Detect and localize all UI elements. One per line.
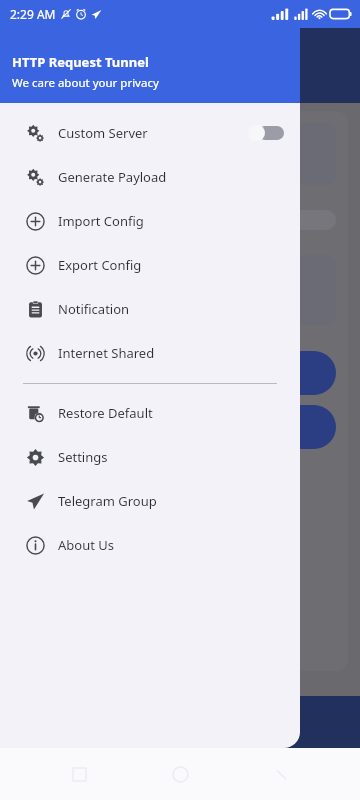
button[interactable]: About Us — [0, 523, 300, 567]
staticText: Export Config — [58, 256, 142, 274]
staticText: 2:29 AM — [10, 6, 56, 22]
button[interactable]: Notification — [0, 287, 300, 331]
staticText: About Us — [58, 536, 115, 554]
button[interactable]: Telegram Group — [0, 479, 300, 523]
button[interactable]: Settings — [0, 435, 300, 479]
button[interactable]: Import Config — [0, 199, 300, 243]
staticText: Settings — [58, 448, 108, 466]
staticText: Custom Server — [58, 124, 148, 142]
button[interactable]: Export Config — [0, 243, 300, 287]
staticText: Generate Payload — [58, 168, 167, 186]
staticText: We care about your privacy — [12, 75, 159, 91]
staticText: Notification — [58, 300, 130, 318]
staticText: Internet Shared — [58, 344, 155, 362]
button[interactable]: Generate Payload — [0, 155, 300, 199]
staticText: HTTP Request Tunnel — [12, 53, 149, 71]
button[interactable]: Custom Server — [0, 111, 300, 155]
staticText: Import Config — [58, 212, 144, 230]
button[interactable]: Restore Default — [0, 391, 300, 435]
staticText: Telegram Group — [58, 492, 157, 510]
button[interactable]: Internet Shared — [0, 331, 300, 375]
staticText: Restore Default — [58, 404, 153, 422]
